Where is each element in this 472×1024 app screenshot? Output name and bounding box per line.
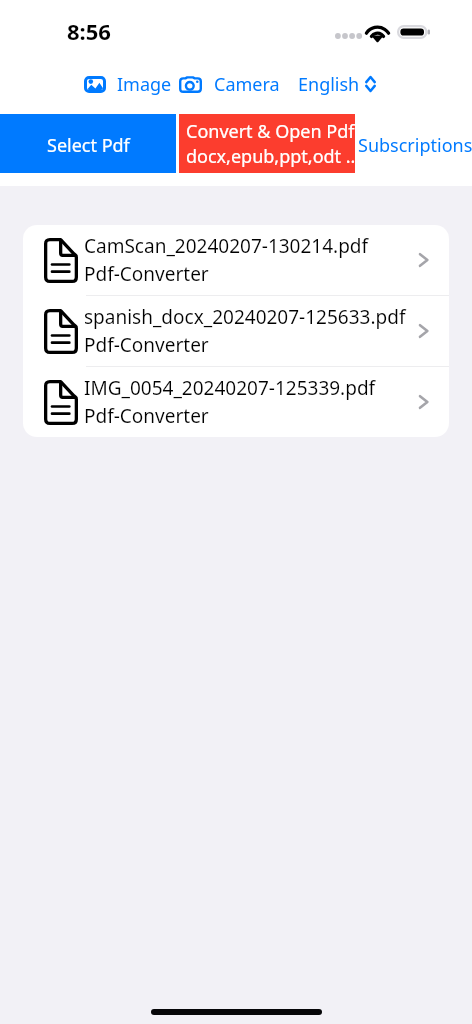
other: Open file: [410, 320, 432, 342]
button[interactable]: Convert & Open Pdf: [179, 114, 355, 173]
button[interactable]: spanish_docx_20240207-125633.pdf: [23, 296, 449, 366]
staticText: CamScan_20240207-130214.pdf: [84, 233, 369, 259]
staticText: Camera: [214, 72, 280, 97]
staticText: 8:56: [67, 16, 111, 46]
button[interactable]: IMG_0054_20240207-125339.pdf: [23, 367, 449, 437]
staticText: IMG_0054_20240207-125339.pdf: [84, 375, 376, 401]
staticText: English: [298, 72, 360, 97]
button[interactable]: Subscriptions: [355, 114, 472, 173]
other: Open file: [410, 249, 432, 271]
other: Open file: [410, 391, 432, 413]
other: Battery: [397, 25, 431, 39]
staticText: Image: [117, 72, 172, 97]
staticText: docx,epub,ppt,odt ..: [186, 144, 355, 169]
other: Pick image: [84, 76, 106, 93]
staticText: spanish_docx_20240207-125633.pdf: [84, 304, 406, 330]
staticText: Pdf-Converter: [84, 403, 209, 429]
button[interactable]: Pick image: [82, 68, 174, 100]
staticText: Select Pdf: [47, 133, 130, 158]
staticText: Pdf-Converter: [84, 332, 209, 358]
other: Wi-Fi: [366, 23, 389, 40]
staticText: Pdf-Converter: [84, 261, 209, 287]
staticText: Convert & Open Pdf: [186, 119, 355, 144]
button[interactable]: Camera: [177, 68, 282, 100]
button[interactable]: CamScan_20240207-130214.pdf: [23, 225, 449, 295]
other: Camera: [179, 75, 202, 93]
button[interactable]: Select Pdf: [0, 114, 176, 173]
button[interactable]: English: [296, 68, 378, 100]
staticText: Subscriptions: [358, 133, 472, 158]
